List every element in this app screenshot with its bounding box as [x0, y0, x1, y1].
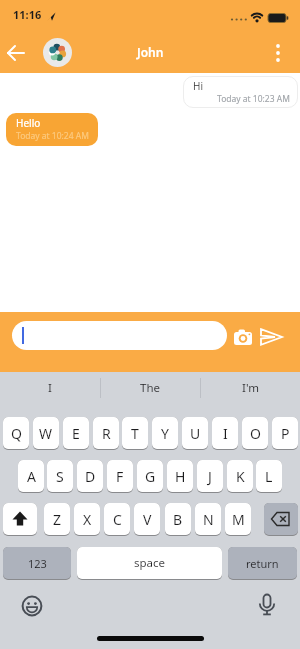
- staticText: space: [134, 555, 166, 571]
- button[interactable]: The: [100, 372, 200, 404]
- button[interactable]: H: [167, 460, 193, 493]
- staticText: A: [27, 467, 36, 486]
- staticText: Y: [161, 424, 169, 443]
- button[interactable]: L: [256, 460, 282, 493]
- button[interactable]: [43, 38, 72, 67]
- staticText: D: [85, 467, 96, 486]
- button[interactable]: O: [242, 417, 268, 450]
- button[interactable]: P: [272, 417, 298, 450]
- button[interactable]: Hi: [183, 76, 298, 108]
- staticText: S: [56, 467, 64, 486]
- button[interactable]: space: [77, 547, 222, 580]
- button[interactable]: G: [137, 460, 163, 493]
- button[interactable]: W: [33, 417, 59, 450]
- button[interactable]: U: [182, 417, 208, 450]
- staticText: E: [72, 424, 80, 443]
- staticText: Q: [11, 424, 22, 443]
- button[interactable]: Z: [44, 503, 70, 536]
- button[interactable]: 123: [3, 547, 71, 580]
- staticText: Hi: [193, 79, 203, 93]
- button[interactable]: C: [104, 503, 130, 536]
- staticText: P: [281, 424, 290, 443]
- staticText: W: [39, 424, 53, 443]
- button[interactable]: K: [227, 460, 253, 493]
- button[interactable]: [264, 503, 298, 536]
- staticText: 123: [28, 556, 47, 571]
- button[interactable]: I: [212, 417, 238, 450]
- staticText: C: [113, 510, 122, 529]
- button[interactable]: X: [74, 503, 100, 536]
- button[interactable]: [259, 326, 285, 348]
- button[interactable]: [2, 40, 30, 66]
- staticText: 11:16: [13, 7, 42, 22]
- button[interactable]: E: [63, 417, 89, 450]
- button[interactable]: [12, 321, 227, 350]
- staticText: I: [48, 380, 52, 396]
- button[interactable]: B: [165, 503, 191, 536]
- staticText: T: [131, 424, 139, 443]
- button[interactable]: R: [93, 417, 119, 450]
- staticText: R: [102, 424, 111, 443]
- button[interactable]: [3, 503, 37, 536]
- staticText: John: [137, 44, 164, 60]
- button[interactable]: [231, 326, 255, 348]
- button[interactable]: V: [134, 503, 160, 536]
- button[interactable]: Q: [3, 417, 29, 450]
- staticText: The: [140, 380, 160, 396]
- staticText: X: [83, 510, 92, 529]
- button[interactable]: S: [47, 460, 73, 493]
- button[interactable]: [20, 594, 44, 618]
- staticText: N: [203, 510, 214, 529]
- button[interactable]: T: [122, 417, 148, 450]
- button[interactable]: M: [225, 503, 251, 536]
- button[interactable]: J: [197, 460, 223, 493]
- staticText: Today at 10:23 AM: [217, 93, 290, 105]
- button[interactable]: [266, 40, 290, 66]
- staticText: V: [143, 510, 152, 529]
- staticText: G: [145, 467, 156, 486]
- staticText: H: [175, 467, 186, 486]
- staticText: Z: [53, 510, 62, 529]
- button[interactable]: A: [18, 460, 44, 493]
- button[interactable]: [255, 593, 279, 617]
- button[interactable]: Y: [152, 417, 178, 450]
- staticText: U: [190, 424, 201, 443]
- staticText: I'm: [242, 380, 259, 396]
- staticText: I: [223, 424, 228, 443]
- staticText: Hello: [16, 116, 41, 130]
- staticText: Today at 10:24 AM: [16, 130, 89, 142]
- button[interactable]: F: [107, 460, 133, 493]
- staticText: B: [173, 510, 183, 529]
- button[interactable]: I: [0, 372, 100, 404]
- button[interactable]: return: [228, 547, 297, 580]
- staticText: J: [208, 467, 212, 486]
- staticText: L: [265, 467, 273, 486]
- button[interactable]: D: [77, 460, 103, 493]
- button[interactable]: I'm: [200, 372, 300, 404]
- staticText: M: [232, 510, 245, 529]
- staticText: F: [116, 467, 124, 486]
- staticText: O: [250, 424, 261, 443]
- staticText: return: [246, 556, 279, 571]
- staticText: K: [236, 467, 245, 486]
- button[interactable]: Hello: [6, 113, 98, 146]
- button[interactable]: N: [195, 503, 221, 536]
